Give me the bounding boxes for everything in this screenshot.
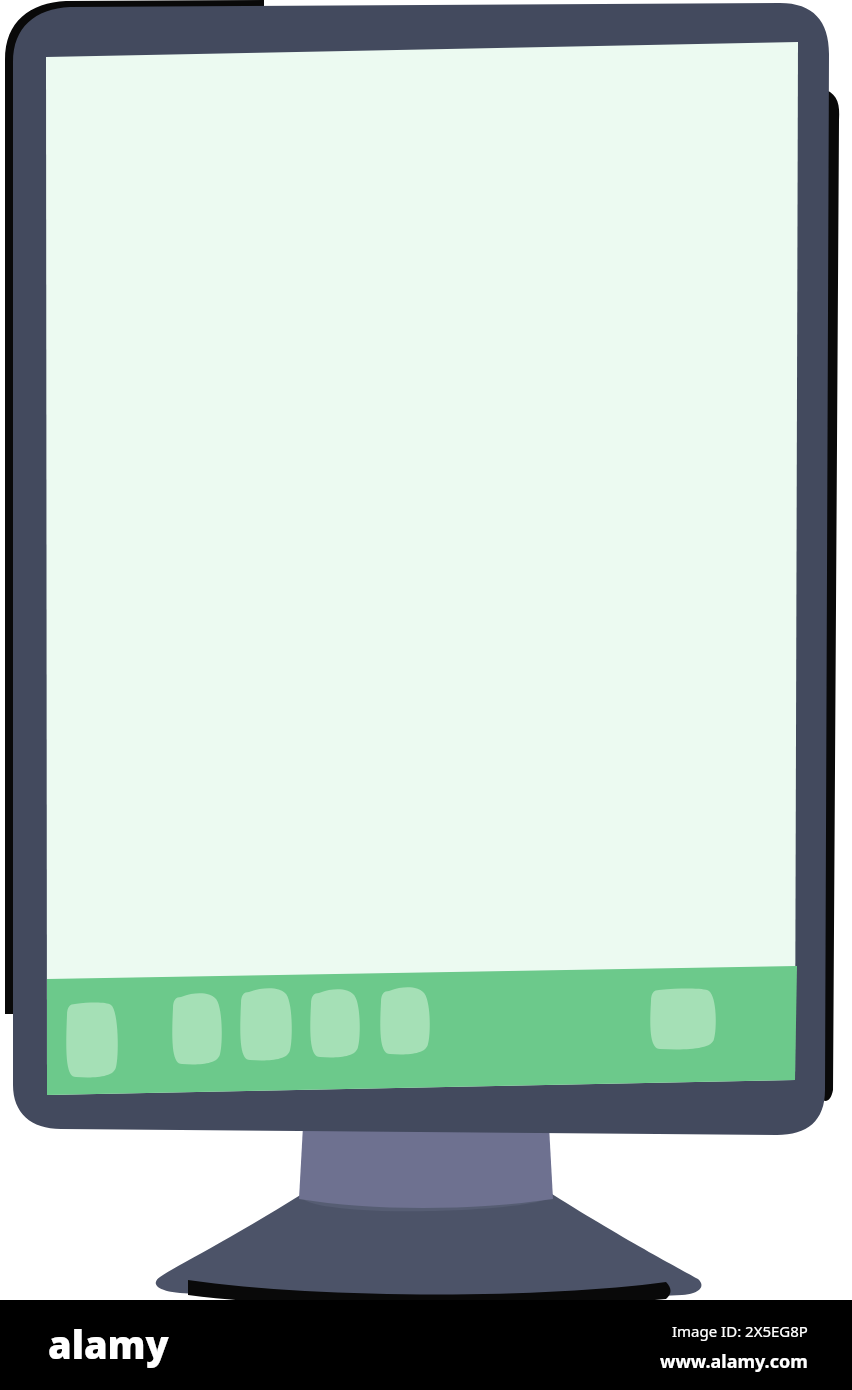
- staticText: Image ID: 2X5EG8P: [672, 1321, 808, 1341]
- button[interactable]: Computer monitor illustration: [0, 0, 852, 1390]
- staticText: alamy: [48, 1318, 169, 1370]
- staticText: www.alamy.com: [660, 1349, 808, 1374]
